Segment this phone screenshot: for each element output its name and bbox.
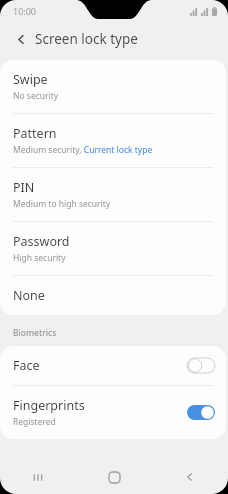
staticText: Password xyxy=(13,233,70,250)
staticText: Pattern xyxy=(13,125,57,142)
staticText: Medium security, Current lock type xyxy=(13,144,153,156)
staticText: High security xyxy=(13,252,66,264)
staticText: Registered xyxy=(13,416,56,428)
button[interactable]: Recents xyxy=(0,460,76,494)
button[interactable]: None xyxy=(0,276,226,315)
staticText: Swipe xyxy=(13,71,48,88)
button[interactable]: Password xyxy=(0,222,226,275)
button[interactable]: PIN xyxy=(0,168,226,221)
staticText: None xyxy=(13,287,45,304)
button[interactable]: Toggle off xyxy=(187,358,215,373)
staticText: Medium to high security xyxy=(13,198,111,210)
staticText: Biometrics xyxy=(13,327,57,339)
staticText: PIN xyxy=(13,179,35,196)
button[interactable]: Toggle on xyxy=(187,405,215,420)
button[interactable]: Swipe xyxy=(0,60,226,113)
button[interactable]: Back xyxy=(152,460,228,494)
button[interactable]: Home xyxy=(76,460,152,494)
button[interactable]: Pattern xyxy=(0,114,226,167)
button[interactable]: Fingerprints xyxy=(0,386,226,439)
staticText: Fingerprints xyxy=(13,397,85,414)
staticText: Screen lock type xyxy=(35,30,138,48)
staticText: No security xyxy=(13,90,59,102)
button[interactable]: Back xyxy=(10,28,32,50)
staticText: Face xyxy=(13,357,40,374)
staticText: 10:00 xyxy=(13,5,37,17)
button[interactable]: Face xyxy=(0,346,226,385)
